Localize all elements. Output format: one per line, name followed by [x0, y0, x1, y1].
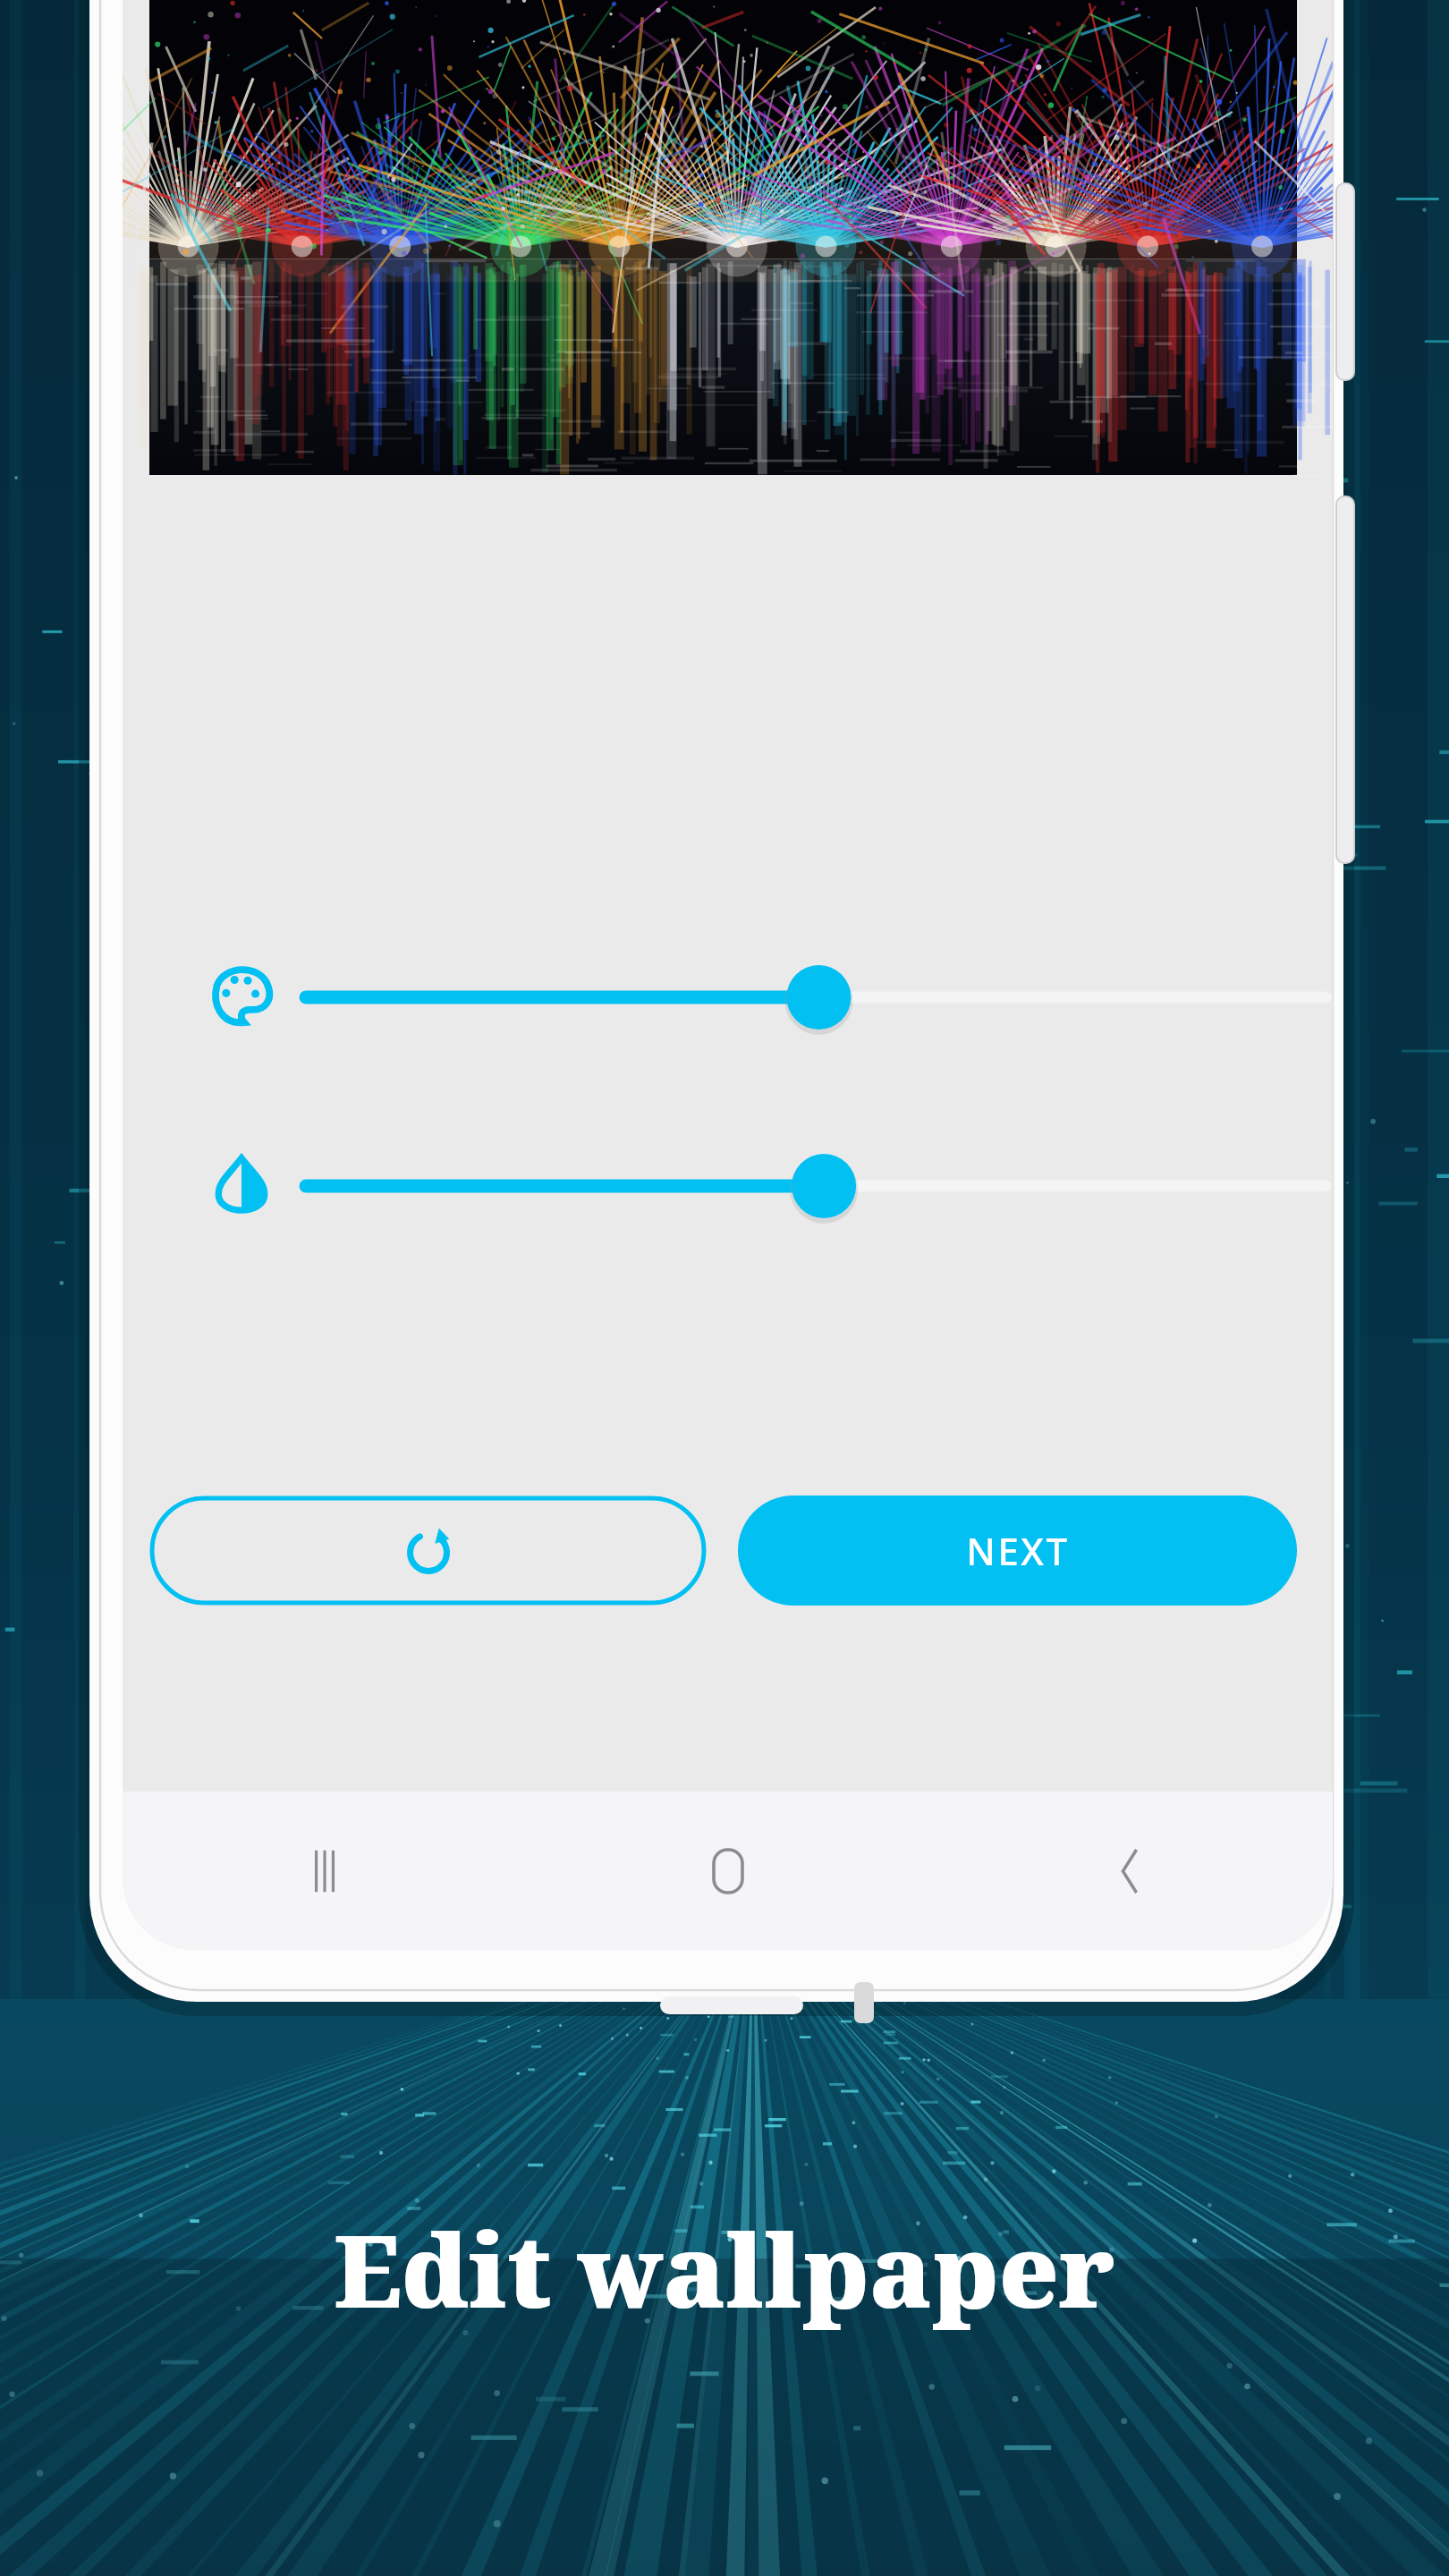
button[interactable]: Colour slider [306, 935, 1326, 1060]
staticText: NEXT [966, 1525, 1070, 1576]
button[interactable]: Recents [123, 1792, 526, 1950]
staticText: Edit wallpaper [334, 2200, 1115, 2337]
button[interactable]: Opacity slider [306, 1123, 1326, 1249]
button[interactable]: Colour [179, 935, 304, 1060]
button[interactable]: Home [526, 1792, 929, 1950]
button[interactable]: NEXT [738, 1496, 1297, 1606]
button[interactable]: Reset [149, 1496, 707, 1606]
button[interactable]: Back [929, 1792, 1333, 1950]
button[interactable]: Opacity [179, 1123, 304, 1249]
